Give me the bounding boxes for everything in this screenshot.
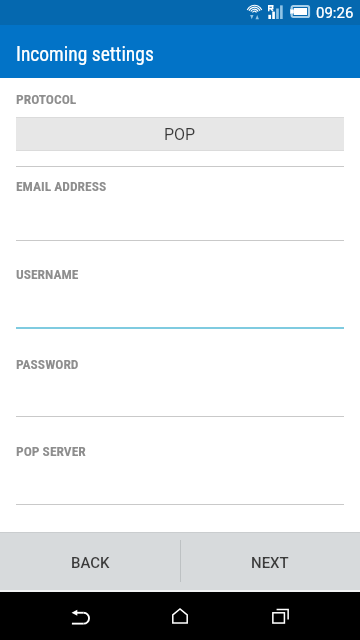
button[interactable]: NEXT <box>180 532 360 590</box>
staticText: USERNAME <box>16 266 79 282</box>
button[interactable]: Incoming settings <box>0 25 360 78</box>
staticText: POP <box>164 125 196 144</box>
button[interactable]: BACK <box>0 532 180 590</box>
button[interactable]: Back <box>48 592 112 640</box>
staticText: POP SERVER <box>16 443 86 459</box>
staticText: PROTOCOL <box>16 91 77 107</box>
staticText: NEXT <box>251 554 289 572</box>
staticText: 09:26 <box>316 4 354 22</box>
button[interactable]: Recent apps <box>248 592 312 640</box>
staticText: BACK <box>71 554 110 572</box>
button[interactable]: Home <box>148 592 212 640</box>
button[interactable]: POP <box>16 117 344 151</box>
staticText: PASSWORD <box>16 356 79 372</box>
staticText: Incoming settings <box>16 43 154 66</box>
staticText: EMAIL ADDRESS <box>16 178 107 194</box>
